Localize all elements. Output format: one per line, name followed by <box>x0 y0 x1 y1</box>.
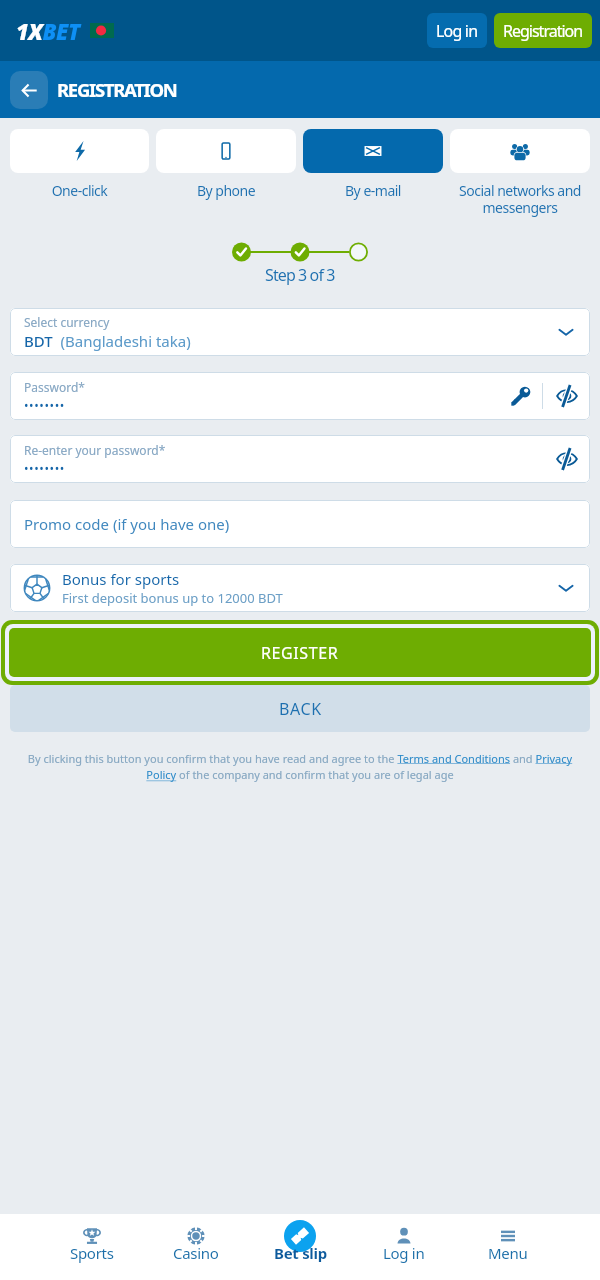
staticText: Select currency <box>24 314 110 330</box>
button[interactable]: Show password <box>543 372 590 420</box>
staticText: First deposit bonus up to 12000 BDT <box>62 589 283 607</box>
staticText: 1XBET <box>16 16 80 46</box>
staticText: Log in <box>436 20 478 42</box>
button[interactable]: BACK <box>10 685 590 732</box>
staticText: Promo code (if you have one) <box>24 514 230 534</box>
staticText: Social networks and messengers <box>450 181 590 217</box>
button[interactable]: Promo code (if you have one) <box>10 500 590 548</box>
button[interactable]: Bonus for sports <box>10 564 590 612</box>
staticText: Registration <box>503 20 583 42</box>
button[interactable]: Generate password <box>500 372 542 420</box>
staticText: BDT (Bangladeshi taka) <box>24 331 191 351</box>
staticText: Log in <box>383 1243 425 1263</box>
staticText: BACK <box>279 698 322 720</box>
staticText: •••••••• <box>24 397 65 413</box>
button[interactable]: One-click <box>10 129 149 200</box>
staticText: Password* <box>24 379 85 395</box>
staticText: Sports <box>70 1243 114 1263</box>
button[interactable]: By phone <box>156 129 296 200</box>
staticText: •••••••• <box>24 460 65 476</box>
button[interactable]: Show password <box>543 435 590 483</box>
button[interactable]: Log in <box>427 13 487 48</box>
staticText: By e-mail <box>303 181 443 200</box>
staticText: Step 3 of 3 <box>265 264 335 286</box>
button[interactable]: Registration <box>494 13 592 48</box>
staticText: Bet slip <box>274 1243 327 1263</box>
button[interactable]: Log in <box>352 1214 456 1280</box>
button[interactable]: By e-mail <box>303 129 443 200</box>
staticText: Bonus for sports <box>62 569 180 589</box>
staticText: One-click <box>10 181 149 200</box>
button[interactable]: Back <box>10 71 48 109</box>
button[interactable]: Bet slip <box>248 1214 352 1280</box>
button[interactable]: Password* <box>10 372 590 420</box>
button[interactable]: REGISTER <box>9 628 591 677</box>
button[interactable]: Sports <box>40 1214 144 1280</box>
staticText: REGISTER <box>261 642 339 664</box>
button[interactable]: Menu <box>456 1214 560 1280</box>
button[interactable]: Social networks and messengers <box>450 129 590 217</box>
staticText: Re-enter your password* <box>24 442 166 458</box>
button[interactable]: Re-enter your password* <box>10 435 590 483</box>
staticText: Menu <box>488 1243 528 1263</box>
staticText: By phone <box>156 181 296 200</box>
staticText: REGISTRATION <box>57 77 177 102</box>
button[interactable]: Casino <box>144 1214 248 1280</box>
button[interactable]: Select currency <box>10 308 590 356</box>
staticText: By clicking this button you confirm that… <box>14 751 586 783</box>
staticText: Casino <box>173 1243 219 1263</box>
